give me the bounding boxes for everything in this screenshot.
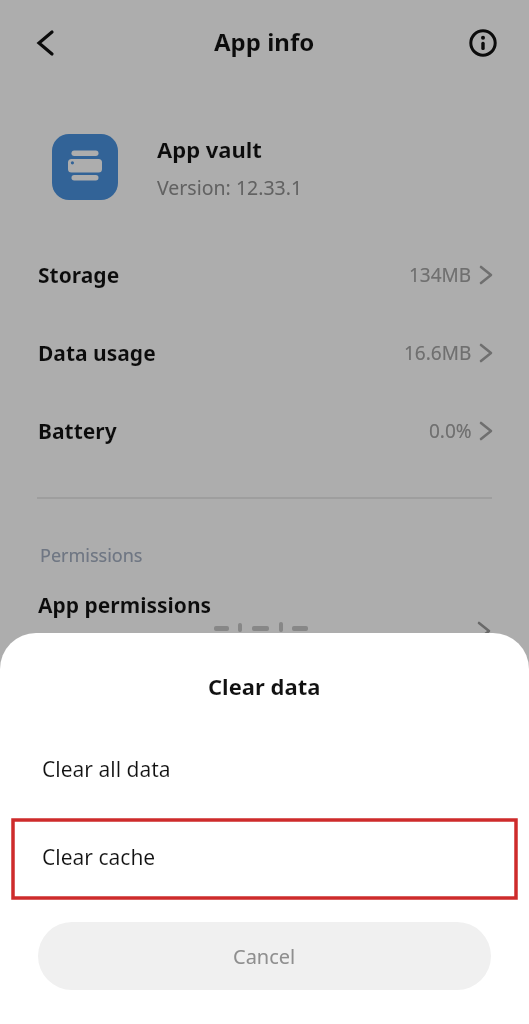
staticText: Battery <box>38 417 117 446</box>
staticText: App vault <box>157 134 262 164</box>
staticText: Clear all data <box>42 755 171 784</box>
staticText: Version: 12.33.1 <box>157 174 303 201</box>
staticText: Clear cache <box>42 843 156 872</box>
staticText: Cancel <box>233 943 296 970</box>
staticText: Storage <box>38 261 120 290</box>
staticText: Data usage <box>38 339 156 368</box>
staticText: Clear data <box>208 671 321 701</box>
staticText: Permissions <box>40 543 143 568</box>
staticText: 16.6MB <box>404 340 472 366</box>
staticText: App info <box>214 25 315 58</box>
staticText: 0.0% <box>429 418 472 444</box>
staticText: App permissions <box>38 591 212 620</box>
staticText: 134MB <box>409 262 472 288</box>
